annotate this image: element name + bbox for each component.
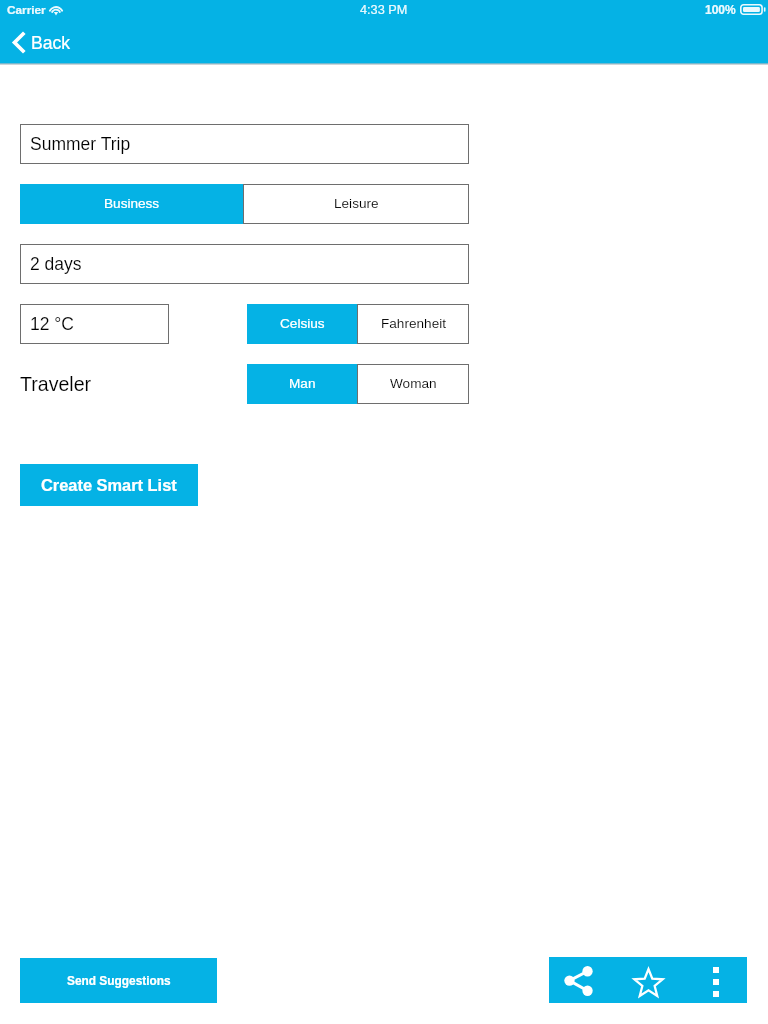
button[interactable]: Man: [247, 364, 357, 404]
button[interactable]: Send Suggestions: [20, 958, 217, 1003]
staticText: Traveler: [20, 373, 92, 395]
button[interactable]: 2 days: [20, 244, 469, 284]
staticText: Carrier: [7, 3, 46, 16]
staticText: Celsius: [280, 316, 325, 331]
button[interactable]: Business: [20, 184, 243, 224]
staticText: Man: [289, 376, 316, 391]
button[interactable]: Woman: [357, 364, 469, 404]
button[interactable]: Celsius: [247, 304, 357, 344]
button[interactable]: Share: [549, 957, 615, 1003]
staticText: Woman: [390, 376, 437, 391]
staticText: 2 days: [30, 254, 82, 274]
button[interactable]: Create Smart List: [20, 464, 198, 506]
staticText: 100%: [705, 3, 736, 16]
button[interactable]: 12 °C: [20, 304, 169, 344]
staticText: 4:33 PM: [360, 3, 408, 17]
staticText: Send Suggestions: [67, 974, 171, 987]
staticText: Fahrenheit: [381, 316, 446, 331]
staticText: 12 °C: [30, 314, 74, 334]
button[interactable]: Summer Trip: [20, 124, 469, 164]
staticText: Create Smart List: [41, 476, 177, 494]
button[interactable]: More options: [681, 957, 747, 1003]
button[interactable]: Fahrenheit: [357, 304, 469, 344]
button[interactable]: Leisure: [243, 184, 469, 224]
staticText: Business: [104, 196, 160, 211]
staticText: Leisure: [334, 196, 379, 211]
staticText: Back: [31, 33, 71, 53]
staticText: Summer Trip: [30, 134, 131, 154]
button[interactable]: Favorite: [615, 957, 681, 1003]
button[interactable]: Back: [9, 30, 74, 55]
